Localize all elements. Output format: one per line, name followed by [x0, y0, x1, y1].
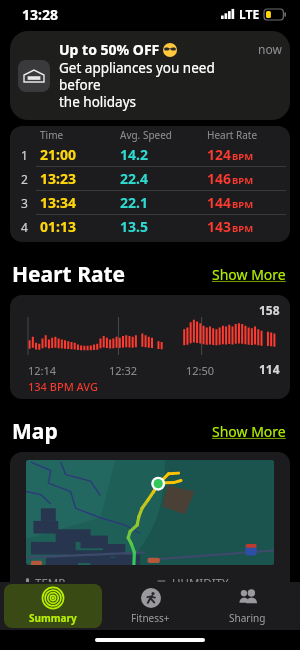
staticText: Summary — [29, 611, 77, 625]
staticText: BPM — [232, 174, 254, 187]
staticText: BPM — [232, 222, 254, 235]
staticText: Sharing — [229, 611, 266, 625]
staticText: 3 — [21, 195, 28, 211]
staticText: 2 — [21, 171, 28, 187]
staticText: 13:34 — [40, 193, 120, 212]
staticText: 134 BPM AVG — [28, 379, 99, 394]
button[interactable]: Up to 50% OFF — [10, 31, 290, 120]
staticText: BPM — [232, 150, 254, 163]
staticText: 12:14 — [28, 363, 57, 378]
staticText: Show More — [212, 265, 286, 284]
staticText: TEMP — [35, 575, 66, 591]
staticText: 54° — [41, 593, 81, 627]
staticText: 12:32 — [109, 363, 138, 378]
staticText: LTE — [239, 6, 260, 22]
staticText: 158 — [259, 302, 280, 318]
staticText: Avg. Speed — [120, 128, 207, 142]
staticText: Fitness+ — [131, 611, 170, 625]
staticText: 01:13 — [40, 217, 120, 236]
staticText: 14.2 — [120, 145, 207, 164]
staticText: 124 — [207, 145, 232, 164]
staticText: 114 — [259, 361, 280, 377]
staticText: Up to 50% OFF — [59, 40, 163, 59]
button[interactable]: 158 — [10, 295, 290, 399]
staticText: BPM — [232, 198, 254, 211]
staticText: Heart Rate — [12, 260, 210, 289]
button[interactable]: Time — [10, 126, 290, 242]
staticText: 1 — [21, 147, 28, 163]
staticText: Heart Rate — [207, 128, 286, 142]
staticText: 13.5 — [120, 217, 207, 236]
staticText: Time — [40, 128, 120, 142]
button[interactable]: Summary — [4, 584, 102, 628]
staticText: 22.4 — [120, 169, 207, 188]
staticText: now — [258, 41, 282, 57]
staticText: 144 — [207, 193, 232, 212]
staticText: 21:00 — [40, 145, 120, 164]
staticText: 41% — [157, 593, 207, 627]
button[interactable]: Sharing — [199, 582, 296, 630]
staticText: Map — [12, 417, 210, 446]
button[interactable]: Fitness+ — [102, 582, 199, 630]
staticText: HUMIDITY — [172, 575, 229, 591]
staticText: 12:50 — [186, 363, 215, 378]
staticText: 22.1 — [120, 193, 207, 212]
staticText: Show More — [212, 422, 286, 441]
staticText: 13:23 — [40, 169, 120, 188]
staticText: 4 — [21, 219, 28, 235]
staticText: 143 — [207, 217, 232, 236]
staticText: 13:28 — [22, 5, 58, 24]
staticText: 146 — [207, 169, 232, 188]
button[interactable]: Show More — [210, 263, 288, 286]
button[interactable]: Show More — [210, 420, 288, 443]
staticText: Get appliances you need before the holid… — [59, 59, 252, 111]
other: Route map — [26, 460, 274, 565]
button[interactable]: Route map — [10, 452, 290, 637]
